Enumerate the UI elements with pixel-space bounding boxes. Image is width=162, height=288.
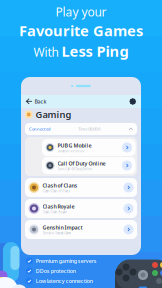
staticText: Favourite Games (19, 21, 143, 40)
staticText: Dont Call Of Duty Online (57, 167, 92, 171)
staticText: Genshin Impact Game (42, 231, 71, 235)
button[interactable]: Genshin Impact (25, 220, 137, 239)
staticText: Call Of Duty Online (57, 160, 105, 167)
staticText: Clash Royale (42, 203, 74, 210)
staticText: Clash of Clans (42, 182, 77, 189)
button[interactable]: Settings (129, 96, 141, 107)
staticText: Duration 00:00:00 (57, 149, 84, 153)
staticText: Gaming (35, 108, 71, 121)
staticText: Premium gaming servers (36, 257, 97, 265)
staticText: Low latency connection (36, 277, 93, 285)
staticText: Back (34, 98, 46, 105)
staticText: Play your (55, 4, 106, 20)
staticText: Time 00:00:0 (78, 126, 100, 132)
button[interactable]: Clash Royale (25, 199, 137, 218)
staticText: Clash Clash Royale (42, 210, 67, 214)
staticText: DDos protection (36, 267, 76, 275)
staticText: Connected (29, 126, 50, 132)
button[interactable]: Call Of Duty Online (42, 157, 135, 174)
staticText: Clash Clash of Clans (42, 189, 69, 193)
button[interactable]: Back (21, 95, 46, 107)
button[interactable]: Clash of Clans (25, 178, 137, 197)
staticText: PUBG Mobile (57, 142, 91, 149)
button[interactable]: PUBG Mobile (42, 139, 135, 156)
staticText: With Less Ping (33, 41, 128, 61)
staticText: Genshin Impact (42, 224, 82, 231)
